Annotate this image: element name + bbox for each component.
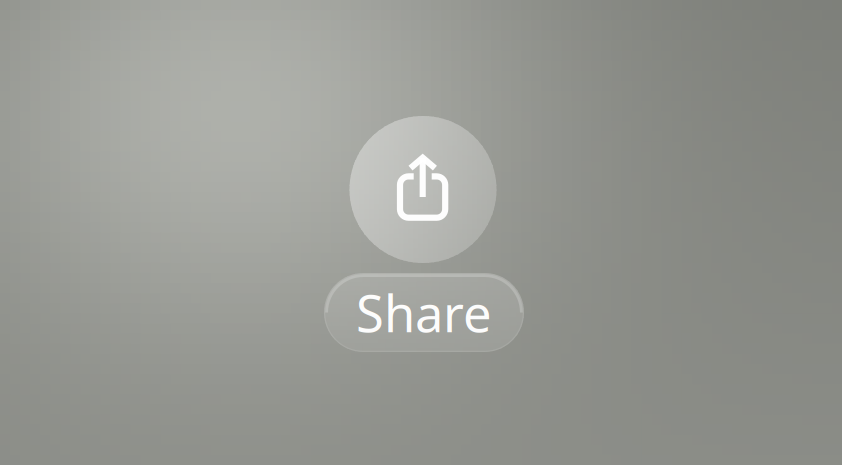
button[interactable]: Share	[324, 273, 524, 352]
button[interactable]: Share	[349, 116, 496, 263]
staticText: Share	[356, 279, 492, 346]
